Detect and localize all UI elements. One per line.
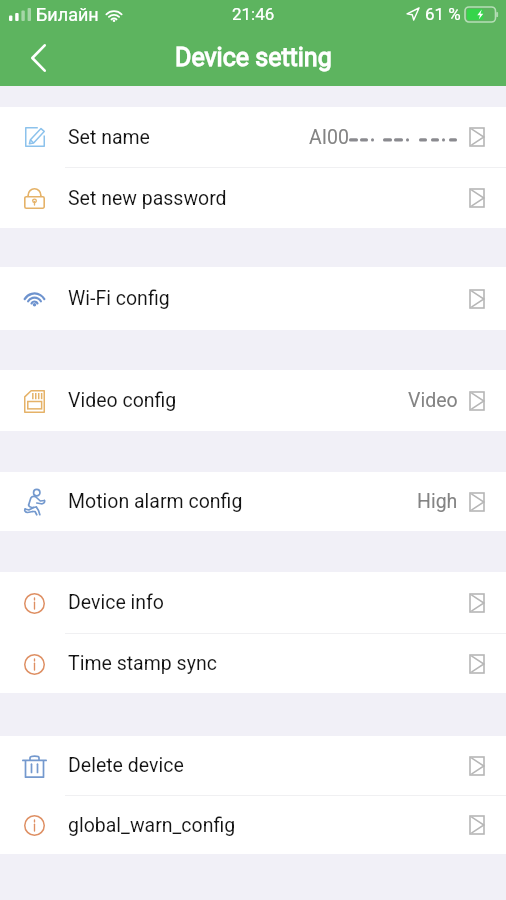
- staticText: Device setting: [175, 43, 332, 72]
- button[interactable]: Time stamp sync: [0, 634, 506, 693]
- button[interactable]: global_warn_config: [0, 796, 506, 854]
- staticText: Device info: [68, 591, 164, 614]
- staticText: 21:46: [232, 4, 275, 24]
- button[interactable]: Set name: [0, 107, 506, 167]
- staticText: Wi-Fi config: [68, 287, 170, 310]
- button[interactable]: Video config: [0, 370, 506, 431]
- staticText: AI00: [309, 126, 349, 149]
- staticText: Set new password: [68, 187, 227, 210]
- staticText: Motion alarm config: [68, 490, 243, 513]
- staticText: Video: [408, 389, 458, 412]
- staticText: High: [417, 490, 458, 513]
- button[interactable]: Device info: [0, 572, 506, 633]
- staticText: Set name: [68, 126, 150, 149]
- staticText: global_warn_config: [68, 814, 236, 837]
- button[interactable]: Motion alarm config: [0, 472, 506, 531]
- staticText: Delete device: [68, 754, 184, 777]
- button[interactable]: Back: [0, 34, 76, 86]
- button[interactable]: Set new password: [0, 168, 506, 228]
- staticText: Time stamp sync: [68, 652, 217, 675]
- staticText: 61 %: [425, 4, 461, 24]
- button[interactable]: Delete device: [0, 736, 506, 795]
- staticText: Билайн: [36, 4, 99, 25]
- button[interactable]: Wi-Fi config: [0, 267, 506, 330]
- staticText: Video config: [68, 389, 177, 412]
